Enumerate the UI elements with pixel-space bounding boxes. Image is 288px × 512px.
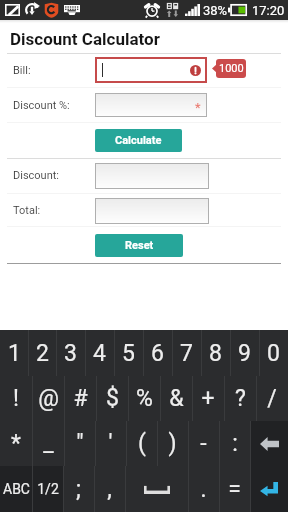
- staticText: -: [200, 430, 207, 457]
- button[interactable]: 5: [114, 330, 143, 376]
- button[interactable]: =: [219, 466, 250, 512]
- staticText: 2: [36, 340, 49, 367]
- button[interactable]: 7: [172, 330, 201, 376]
- staticText: 1000: [219, 62, 244, 75]
- staticText: 4: [93, 340, 106, 367]
- staticText: Bill:: [13, 64, 31, 77]
- staticText: 38%: [203, 3, 228, 18]
- button[interactable]: 3: [56, 330, 85, 376]
- button[interactable]: .: [188, 466, 219, 512]
- button[interactable]: [95, 198, 209, 224]
- button[interactable]: 6: [143, 330, 172, 376]
- button[interactable]: 1000: [216, 59, 246, 78]
- button[interactable]: *: [95, 93, 207, 117]
- staticText: Discount %:: [13, 99, 70, 112]
- button[interactable]: Space: [125, 466, 188, 512]
- button[interactable]: -: [188, 421, 219, 466]
- staticText: *: [11, 430, 21, 457]
- staticText: $: [106, 385, 119, 412]
- button[interactable]: +: [192, 376, 224, 421]
- staticText: 7: [180, 340, 193, 367]
- staticText: ,: [107, 476, 112, 503]
- button[interactable]: [95, 163, 209, 189]
- button[interactable]: :: [219, 421, 250, 466]
- button[interactable]: %: [128, 376, 160, 421]
- button[interactable]: 9: [230, 330, 259, 376]
- staticText: _: [43, 430, 54, 457]
- staticText: ;: [76, 476, 81, 503]
- staticText: ': [108, 430, 113, 457]
- staticText: 1: [8, 340, 21, 367]
- staticText: 3: [64, 340, 77, 367]
- button[interactable]: &: [160, 376, 192, 421]
- staticText: *: [195, 100, 201, 115]
- staticText: 1/2: [37, 481, 59, 497]
- staticText: Discount:: [13, 169, 60, 182]
- staticText: /: [267, 385, 277, 412]
- button[interactable]: 0: [259, 330, 288, 376]
- staticText: Calculate: [115, 134, 162, 147]
- staticText: #: [73, 385, 88, 412]
- staticText: &: [169, 385, 184, 412]
- staticText: +: [201, 385, 215, 412]
- button[interactable]: !: [0, 376, 32, 421]
- staticText: ?: [235, 385, 246, 412]
- staticText: 9: [238, 340, 251, 367]
- button[interactable]: ;: [63, 466, 94, 512]
- button[interactable]: $: [96, 376, 128, 421]
- button[interactable]: 4: [85, 330, 114, 376]
- staticText: =: [228, 476, 241, 503]
- button[interactable]: /: [256, 376, 288, 421]
- button[interactable]: ABC: [0, 466, 32, 512]
- staticText: 6: [151, 340, 164, 367]
- button[interactable]: ): [157, 421, 188, 466]
- button[interactable]: 1/2: [32, 466, 63, 512]
- button[interactable]: Backspace: [250, 421, 288, 466]
- button[interactable]: 8: [201, 330, 230, 376]
- button[interactable]: 2: [28, 330, 56, 376]
- button[interactable]: [95, 57, 207, 83]
- staticText: Total:: [13, 204, 41, 217]
- staticText: ): [168, 430, 177, 457]
- button[interactable]: *: [0, 421, 32, 466]
- button[interactable]: Calculate: [95, 129, 182, 152]
- button[interactable]: ?: [224, 376, 256, 421]
- staticText: :: [232, 430, 238, 457]
- button[interactable]: Reset: [95, 234, 183, 257]
- staticText: @: [38, 385, 59, 412]
- button[interactable]: Enter: [250, 466, 288, 512]
- staticText: Reset: [125, 239, 154, 252]
- button[interactable]: @: [32, 376, 64, 421]
- button[interactable]: _: [32, 421, 64, 466]
- button[interactable]: #: [64, 376, 96, 421]
- staticText: !: [13, 385, 19, 412]
- button[interactable]: ': [95, 421, 126, 466]
- staticText: Discount Calculator: [10, 29, 160, 49]
- staticText: 17:20: [252, 3, 285, 18]
- button[interactable]: (: [126, 421, 157, 466]
- button[interactable]: ,: [94, 466, 125, 512]
- staticText: 5: [122, 340, 135, 367]
- button[interactable]: ": [64, 421, 95, 466]
- button[interactable]: 1: [0, 330, 28, 376]
- staticText: ABC: [3, 481, 30, 497]
- staticText: %: [136, 385, 153, 412]
- staticText: .: [200, 476, 207, 503]
- staticText: 8: [209, 340, 222, 367]
- staticText: (: [138, 430, 146, 457]
- staticText: ": [76, 430, 84, 457]
- staticText: 0: [267, 340, 280, 367]
